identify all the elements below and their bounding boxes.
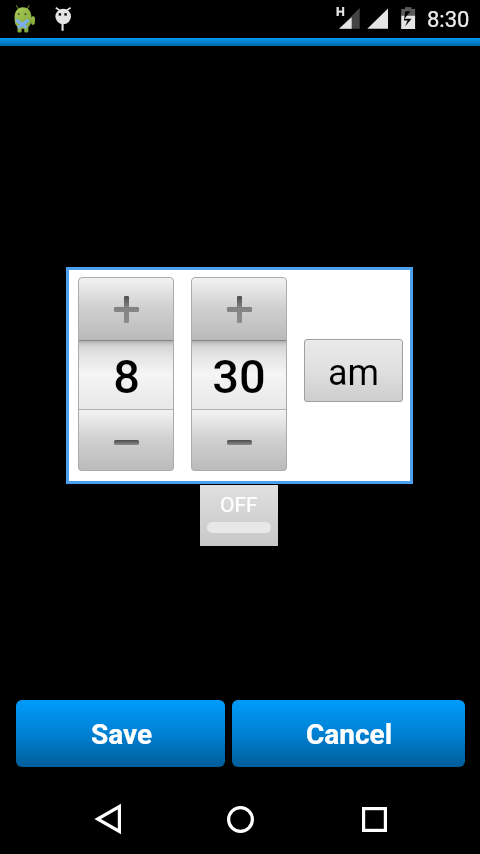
button[interactable]: Increment [191,277,287,340]
button[interactable]: Increment [78,277,174,340]
staticText: 8 [113,349,140,404]
button[interactable]: Recent apps [344,789,404,849]
staticText: 8:30 [427,7,470,33]
staticText: Cancel [306,718,393,751]
button[interactable]: Decrement [191,410,287,471]
staticText: H [336,4,345,19]
button[interactable]: Save [16,700,225,767]
button[interactable]: Cancel [232,700,465,767]
staticText: am [328,352,380,394]
staticText: 30 [212,349,266,404]
button[interactable]: Home [210,789,270,849]
button[interactable]: Back [78,789,138,849]
staticText: OFF [220,493,258,518]
button[interactable]: Decrement [78,410,174,471]
button[interactable]: OFF [200,485,278,546]
button[interactable]: am [304,339,403,402]
staticText: Save [91,718,153,751]
